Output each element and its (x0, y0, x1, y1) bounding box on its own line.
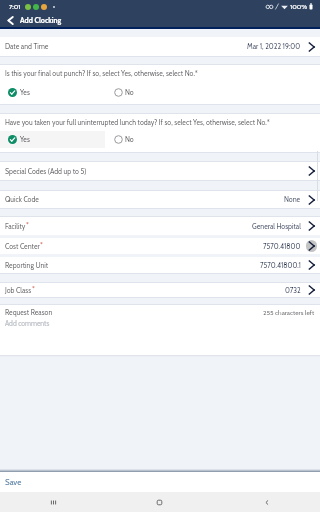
button[interactable]: Back (0, 13, 20, 27)
staticText: Is this your final out punch? If so, sel… (5, 69, 198, 78)
staticText: 7:01 (9, 3, 21, 11)
staticText: * (32, 285, 35, 293)
button[interactable]: Facility (0, 217, 320, 235)
button[interactable]: No (105, 86, 205, 98)
button[interactable]: Yes (0, 86, 105, 98)
staticText: Facility (5, 222, 26, 231)
staticText: Reporting Unit (5, 261, 49, 270)
button[interactable]: Yes (0, 131, 105, 148)
staticText: Job Class (5, 286, 32, 295)
staticText: 7570.41800.1 (260, 261, 301, 270)
button[interactable]: No (105, 131, 205, 148)
staticText: 7570.41800 (263, 242, 301, 251)
staticText: Mar 1, 2022 19:00 (247, 42, 301, 51)
button[interactable]: Date and Time (0, 37, 320, 56)
staticText: * (40, 241, 43, 249)
button[interactable]: Job Class (0, 283, 320, 297)
staticText: Yes (20, 135, 30, 144)
staticText: Quick Code (5, 195, 39, 204)
staticText: Save (5, 477, 22, 487)
button[interactable]: Request Reason (0, 305, 320, 355)
staticText: 0732 (285, 286, 301, 295)
button[interactable]: Cost Center (0, 238, 320, 254)
staticText: Date and Time (5, 42, 49, 51)
staticText: Yes (20, 88, 30, 97)
button[interactable]: Reporting Unit (0, 257, 320, 273)
button[interactable]: Save (0, 472, 32, 492)
staticText: Add Clocking (20, 16, 62, 25)
staticText: * (26, 221, 29, 229)
button[interactable]: Back (213, 492, 320, 512)
button[interactable]: Home (106, 492, 213, 512)
staticText: No (125, 135, 134, 144)
staticText: Have you taken your full uninterrupted l… (5, 118, 270, 127)
button[interactable]: Recent apps (0, 492, 106, 512)
staticText: Request Reason (5, 308, 53, 317)
button[interactable]: Quick Code (0, 191, 320, 208)
staticText: No (125, 88, 134, 97)
staticText: Add comments (5, 319, 50, 327)
staticText: General Hospital (252, 222, 301, 231)
staticText: None (284, 195, 301, 204)
staticText: 100% (290, 3, 308, 11)
staticText: 255 characters left (263, 309, 315, 317)
button[interactable]: Special Codes (Add up to 5) (0, 162, 320, 180)
staticText: Special Codes (Add up to 5) (5, 167, 87, 176)
staticText: Cost Center (5, 242, 40, 251)
